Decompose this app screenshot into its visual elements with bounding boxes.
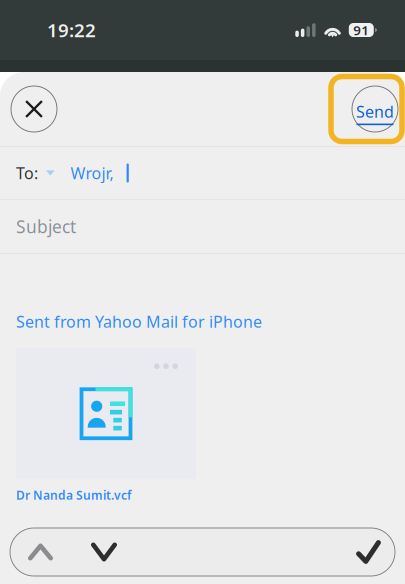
- staticText: 91: [353, 21, 369, 39]
- staticText: Sent from Yahoo Mail for iPhone: [16, 311, 262, 332]
- staticText: 19:22: [47, 18, 96, 42]
- button[interactable]: Subject: [0, 200, 405, 253]
- staticText: Wrojr,: [71, 162, 114, 184]
- staticText: Dr Nanda Sumit.vcf: [16, 487, 131, 503]
- button[interactable]: To:: [0, 147, 405, 199]
- button[interactable]: Done: [350, 530, 387, 574]
- button[interactable]: Close: [11, 86, 57, 132]
- staticText: Subject: [16, 215, 76, 238]
- button[interactable]: Next field: [82, 530, 126, 573]
- staticText: Send: [356, 101, 394, 122]
- button[interactable]: Previous field: [19, 531, 62, 572]
- button[interactable]: Dr Nanda Sumit.vcf attachment: [16, 348, 196, 503]
- staticText: To:: [16, 162, 38, 184]
- button[interactable]: Send: [331, 76, 402, 141]
